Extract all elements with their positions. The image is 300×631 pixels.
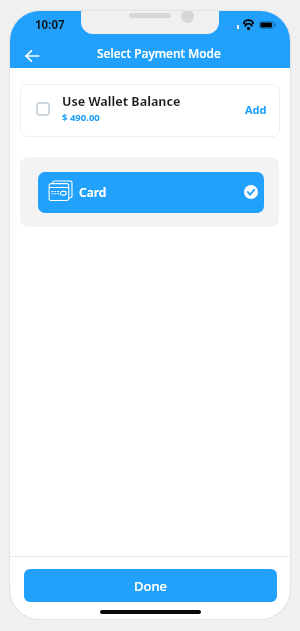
staticText: Done bbox=[134, 577, 168, 595]
staticText: Add bbox=[245, 102, 267, 117]
button[interactable]: Use Wallet Balance bbox=[20, 84, 280, 137]
staticText: Select Payment Mode bbox=[97, 45, 221, 61]
staticText: $ 490.00 bbox=[62, 111, 100, 124]
button[interactable]: Add bbox=[239, 97, 273, 121]
staticText: 10:07 bbox=[35, 17, 65, 33]
button[interactable]: Done bbox=[24, 569, 277, 602]
button[interactable]: Card bbox=[38, 172, 264, 213]
button[interactable]: Back bbox=[17, 41, 46, 70]
staticText: Card bbox=[79, 184, 107, 200]
staticText: Use Wallet Balance bbox=[62, 93, 181, 110]
